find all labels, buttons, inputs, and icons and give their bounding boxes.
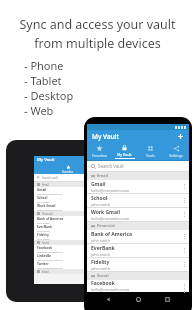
button[interactable]: Favorites — [87, 143, 112, 160]
staticText: Financial — [97, 223, 115, 229]
staticText: Gmail — [37, 188, 47, 192]
button[interactable]: Home — [134, 295, 143, 304]
staticText: hello@mevaulter.com — [91, 216, 130, 221]
button[interactable]: Bank of America — [87, 230, 189, 244]
staticText: - Phone — [24, 58, 64, 73]
button[interactable]: Recents — [163, 295, 172, 304]
staticText: Work Gmail — [91, 209, 120, 216]
staticText: EverBank — [37, 225, 53, 229]
button[interactable]: Twitter — [34, 261, 102, 269]
staticText: Fidelity — [37, 233, 49, 237]
button[interactable]: School — [34, 195, 102, 203]
button[interactable]: School — [87, 194, 189, 208]
staticText: john.smith — [91, 202, 111, 207]
staticText: Search vault — [98, 163, 124, 169]
button[interactable]: My Vault — [112, 143, 137, 160]
staticText: Search vault — [42, 176, 59, 180]
button[interactable]: Facebook — [34, 245, 102, 253]
staticText: Facebook — [37, 246, 53, 250]
button[interactable]: Fidelity — [34, 232, 102, 240]
button[interactable]: Gmail — [87, 180, 189, 194]
staticText: Tools — [146, 153, 155, 158]
staticText: School — [37, 196, 48, 200]
staticText: john.smith — [37, 200, 50, 203]
staticText: Sync and access your vault — [19, 16, 176, 33]
staticText: My Vault — [117, 152, 132, 157]
staticText: hello@mevaulter.com — [37, 192, 63, 195]
staticText: john.smith — [37, 221, 50, 224]
staticText: john.smith — [91, 266, 111, 271]
button[interactable]: Back — [104, 295, 113, 304]
staticText: hello@mevaulter.com — [91, 188, 130, 193]
staticText: hello@mevaulter.com — [37, 266, 63, 269]
staticText: Bank of America — [91, 231, 132, 238]
staticText: Email — [42, 270, 49, 274]
staticText: Financial — [42, 212, 53, 216]
staticText: Facebook — [91, 280, 115, 287]
staticText: Twitter — [37, 262, 49, 266]
staticText: hello@mevaulter.com — [37, 250, 63, 253]
staticText: Gmail — [91, 181, 106, 188]
staticText: from multiple devices — [34, 35, 161, 52]
button[interactable]: EverBank — [34, 224, 102, 232]
button[interactable]: Work Gmail — [87, 208, 189, 222]
staticText: Favorites — [92, 153, 108, 158]
button[interactable]: Add — [176, 132, 185, 141]
staticText: Email — [42, 183, 49, 187]
staticText: - Desktop — [24, 88, 74, 103]
staticText: john.smith — [91, 252, 111, 257]
staticText: john.smith — [37, 237, 50, 240]
staticText: Settings — [169, 153, 183, 158]
button[interactable]: Gmail — [34, 187, 102, 195]
button[interactable]: Work Gmail — [34, 203, 102, 211]
staticText: School — [91, 195, 108, 202]
staticText: Fidelity — [91, 259, 110, 266]
button[interactable]: Settings — [163, 143, 189, 160]
button[interactable]: LinkedIn — [34, 253, 102, 261]
button[interactable]: Facebook — [87, 280, 189, 292]
staticText: Work Gmail — [37, 204, 56, 208]
staticText: Social — [42, 241, 50, 245]
staticText: Favorites — [62, 170, 74, 174]
staticText: hello@mevaulter.com — [91, 287, 130, 292]
staticText: Social — [97, 273, 109, 279]
staticText: hello@mevaulter.com — [37, 208, 63, 211]
button[interactable]: Tools — [137, 143, 163, 160]
staticText: john.smith — [37, 229, 50, 232]
button[interactable]: Search vault — [91, 161, 189, 171]
button[interactable]: Fidelity — [87, 258, 189, 272]
staticText: - Tablet — [24, 73, 62, 88]
button[interactable]: Bank of America — [34, 216, 102, 224]
staticText: LinkedIn — [37, 254, 52, 258]
staticText: Email — [97, 173, 108, 179]
staticText: EverBank — [91, 245, 115, 252]
staticText: - Web — [24, 103, 54, 118]
staticText: Bank of America — [37, 217, 64, 221]
staticText: john.smith — [91, 238, 111, 243]
staticText: hello@mevaulter.com — [37, 258, 63, 261]
staticText: My Vault — [92, 132, 119, 141]
button[interactable]: EverBank — [87, 244, 189, 258]
staticText: My Vault — [37, 157, 55, 163]
